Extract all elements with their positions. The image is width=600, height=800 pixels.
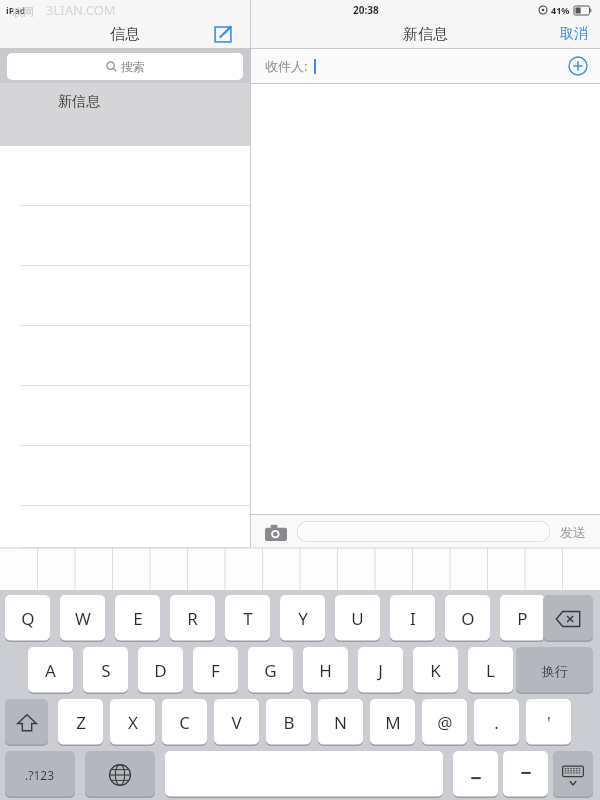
staticText: E [133,607,143,630]
button[interactable]: U [335,595,380,642]
button[interactable]: H [303,647,348,694]
button[interactable]: Z [58,699,103,746]
staticText: 取消 [560,25,588,43]
button[interactable]: P [500,595,545,642]
staticText: 3LIAN.COM [46,1,116,19]
staticText: ' [547,711,551,734]
staticText: 新信息 [403,25,448,44]
button[interactable] [0,206,250,266]
button[interactable]: W [60,595,105,642]
button[interactable]: Keyboard key [543,595,593,642]
button[interactable] [0,446,250,506]
button[interactable]: 取消 [560,25,588,43]
button[interactable]: Y [280,595,325,642]
button[interactable] [0,146,250,206]
staticText: iPad [6,4,26,16]
staticText: Y [298,607,308,630]
staticText: J [378,659,383,682]
button[interactable]: R [170,595,215,642]
staticText: B [283,711,295,734]
button[interactable]: I [390,595,435,642]
staticText: D [154,659,167,682]
button[interactable]: 换行 [516,647,593,694]
staticText: I [410,607,416,630]
staticText: 联网 [12,5,34,19]
staticText: @ [437,711,453,734]
button[interactable]: ' [526,699,571,746]
staticText: W [75,607,91,630]
button[interactable]: B [266,699,311,746]
staticText: 新信息 [58,93,100,111]
button[interactable]: G [248,647,293,694]
button[interactable]: Camera [265,523,287,541]
button[interactable]: E [115,595,160,642]
staticText: V [231,711,242,734]
button[interactable]: Keyboard key [85,751,155,798]
staticText: M [385,711,401,734]
staticText: Q [21,607,35,630]
button[interactable]: C [162,699,207,746]
button[interactable]: F [193,647,238,694]
button[interactable]: Keyboard key [553,751,593,798]
staticText: U [351,607,364,630]
staticText: .?123 [25,767,55,783]
button[interactable]: 发送 [560,524,600,540]
button[interactable]: D [138,647,183,694]
button[interactable]: 新信息 [0,83,250,146]
staticText: L [486,659,495,682]
button[interactable]: Keyboard key [503,751,548,798]
staticText: . [494,711,499,734]
button[interactable]: J [358,647,403,694]
staticText: 换行 [542,663,568,679]
button[interactable]: M [370,699,415,746]
button[interactable]: A [28,647,73,694]
staticText: X [128,711,138,734]
button[interactable]: .?123 [5,751,75,798]
button[interactable]: T [225,595,270,642]
staticText: H [319,659,332,682]
button[interactable]: N [318,699,363,746]
button[interactable] [0,266,250,326]
button[interactable]: Q [5,595,50,642]
button[interactable]: V [214,699,259,746]
button[interactable]: Add contact [568,56,588,76]
staticText: 发送 [560,524,586,540]
staticText: C [179,711,190,734]
staticText: 搜索 [121,59,145,74]
staticText: O [461,607,475,630]
staticText: 收件人: [265,57,308,75]
staticText: 41% [551,4,570,16]
button[interactable]: K [413,647,458,694]
button[interactable]: 搜索 [7,53,243,80]
staticText: N [334,711,347,734]
button[interactable]: X [110,699,155,746]
button[interactable]: Keyboard key [5,699,48,746]
button[interactable] [0,326,250,386]
button[interactable]: S [83,647,128,694]
staticText: Z [76,711,86,734]
button[interactable]: New message [212,23,234,45]
button[interactable]: L [468,647,513,694]
button[interactable] [0,386,250,446]
staticText: T [243,607,253,630]
button[interactable]: Keyboard key [453,751,498,798]
staticText: P [517,607,528,630]
button[interactable] [0,506,250,548]
staticText: F [211,659,220,682]
staticText: 信息 [110,25,140,44]
button[interactable]: O [445,595,490,642]
button[interactable]: . [474,699,519,746]
button[interactable] [165,751,443,798]
staticText: A [45,659,56,682]
staticText: S [101,659,111,682]
button[interactable]: @ [422,699,467,746]
staticText: K [430,659,441,682]
staticText: 20:38 [353,3,379,17]
staticText: G [264,659,277,682]
staticText: R [187,607,198,630]
button[interactable] [297,521,550,542]
